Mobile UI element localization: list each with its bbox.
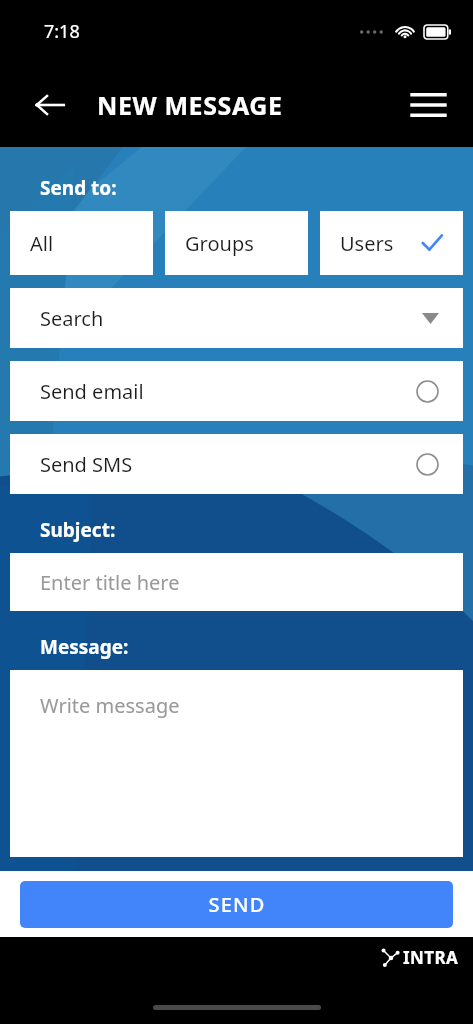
staticText: Send email <box>40 378 144 405</box>
button[interactable]: Write message <box>10 670 463 857</box>
staticText: Message: <box>40 634 129 660</box>
button[interactable]: SEND <box>20 881 453 928</box>
button[interactable]: Send email <box>10 361 463 421</box>
staticText: Enter title here <box>40 569 180 596</box>
staticText: Send SMS <box>40 451 133 478</box>
staticText: Subject: <box>40 517 116 543</box>
button[interactable]: Menu <box>401 78 455 132</box>
button[interactable]: Users <box>320 211 463 275</box>
staticText: Send to: <box>40 175 117 201</box>
staticText: All <box>30 230 54 257</box>
button[interactable]: Groups <box>165 211 308 275</box>
staticText: Write message <box>40 692 180 719</box>
staticText: Users <box>340 230 394 257</box>
staticText: INTRA <box>403 946 459 969</box>
button[interactable]: Search <box>10 288 463 348</box>
staticText: SEND <box>208 891 266 918</box>
staticText: Search <box>40 305 104 332</box>
button[interactable]: Send SMS <box>10 434 463 494</box>
staticText: Groups <box>185 230 254 257</box>
button[interactable]: Back <box>20 75 80 135</box>
staticText: 7:18 <box>44 19 80 44</box>
staticText: NEW MESSAGE <box>97 88 283 122</box>
button[interactable]: All <box>10 211 153 275</box>
button[interactable]: Enter title here <box>10 553 463 611</box>
